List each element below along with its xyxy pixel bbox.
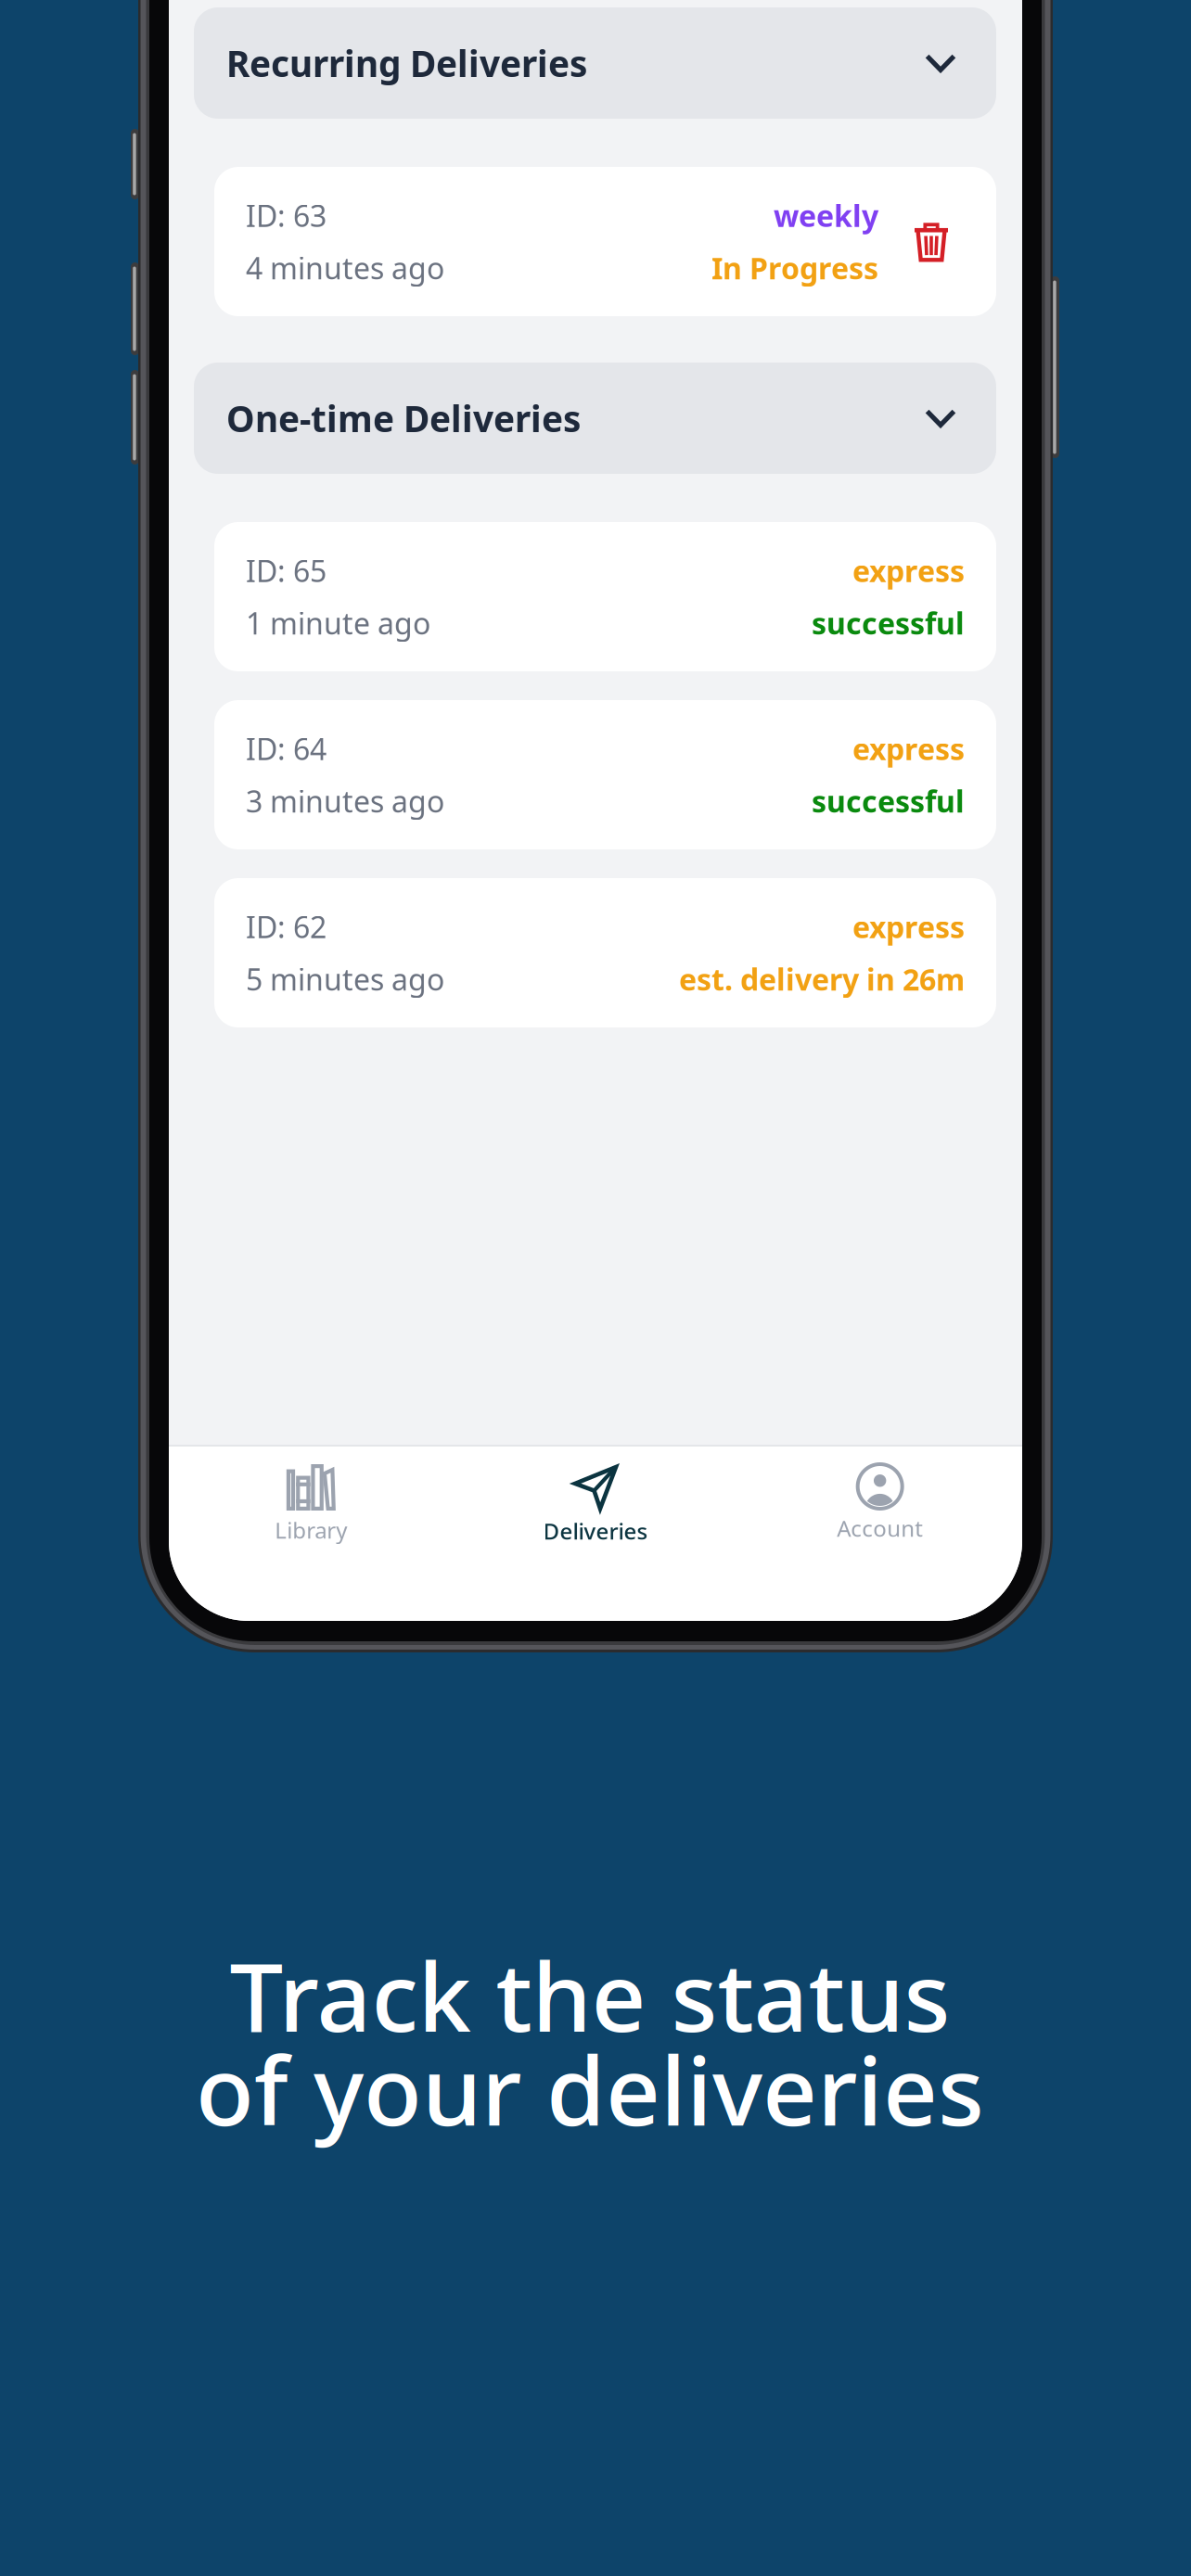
- button[interactable]: ID: 63: [214, 167, 996, 316]
- button[interactable]: Library: [169, 1464, 453, 1557]
- staticText: 1 minute ago: [246, 603, 430, 643]
- staticText: Account: [837, 1513, 923, 1543]
- button[interactable]: Deliveries: [453, 1464, 738, 1557]
- staticText: successful: [812, 603, 965, 643]
- button[interactable]: Delete delivery: [899, 204, 964, 279]
- button[interactable]: One-time Deliveries: [194, 363, 996, 474]
- staticText: of your deliveries: [196, 2025, 984, 2152]
- staticText: ID: 63: [246, 196, 327, 235]
- staticText: weekly: [774, 196, 878, 235]
- staticText: 5 minutes ago: [246, 959, 444, 999]
- button[interactable]: Recurring Deliveries: [194, 7, 996, 119]
- staticText: In Progress: [711, 248, 878, 287]
- staticText: est. delivery in 26m: [679, 959, 965, 999]
- staticText: express: [852, 551, 965, 590]
- staticText: 3 minutes ago: [246, 781, 444, 821]
- button[interactable]: ID: 64: [214, 700, 996, 849]
- button[interactable]: ID: 65: [214, 522, 996, 671]
- staticText: Track the status: [230, 1932, 950, 2058]
- staticText: ID: 65: [246, 551, 327, 590]
- button[interactable]: ID: 62: [214, 878, 996, 1027]
- staticText: Recurring Deliveries: [226, 39, 587, 87]
- button[interactable]: Account: [738, 1464, 1022, 1557]
- staticText: ID: 64: [246, 729, 327, 768]
- staticText: express: [852, 907, 965, 946]
- staticText: Deliveries: [543, 1516, 648, 1546]
- staticText: Library: [275, 1515, 347, 1545]
- staticText: 4 minutes ago: [246, 248, 444, 287]
- staticText: One-time Deliveries: [226, 394, 581, 442]
- staticText: express: [852, 729, 965, 768]
- staticText: ID: 62: [246, 907, 327, 946]
- staticText: successful: [812, 781, 965, 821]
